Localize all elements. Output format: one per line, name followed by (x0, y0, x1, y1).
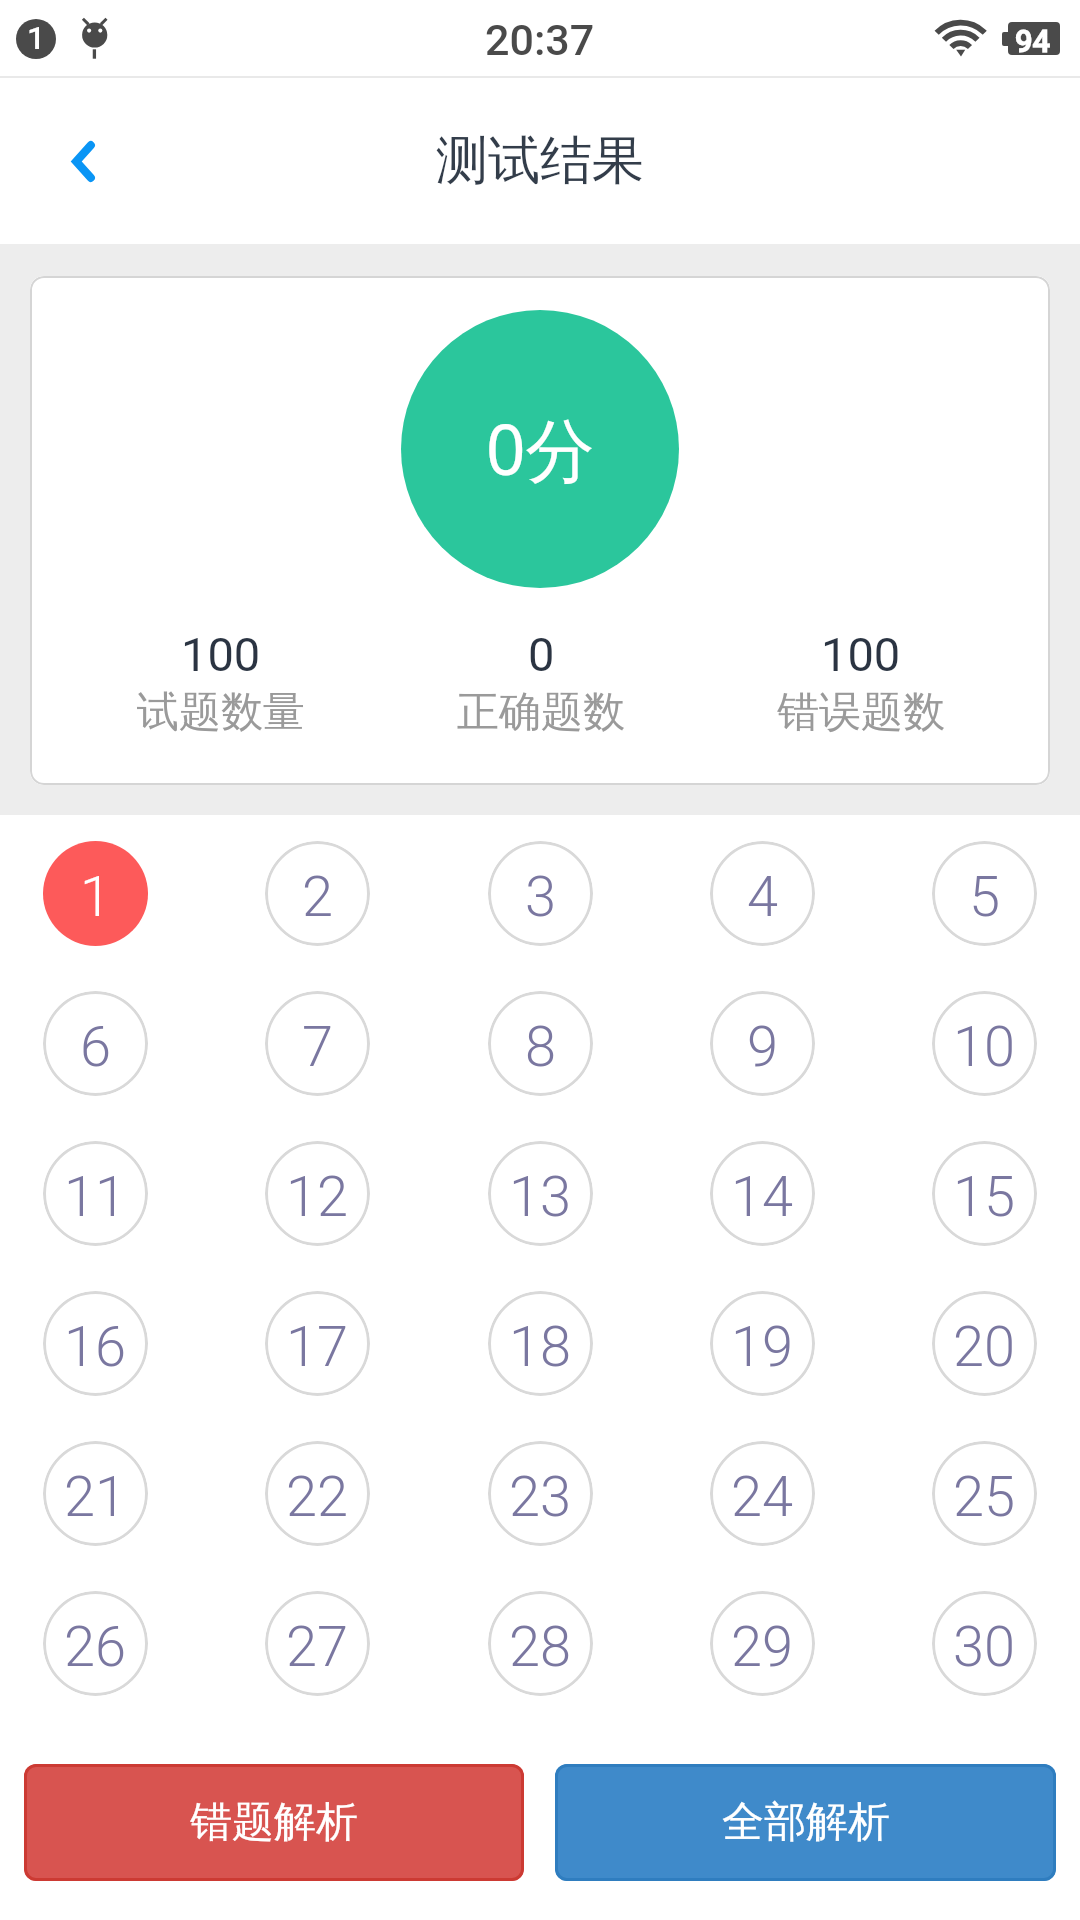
staticText: 0 (528, 627, 555, 682)
button[interactable]: 全部解析 (555, 1764, 1056, 1881)
button[interactable]: 12 (265, 1141, 370, 1246)
staticText: 全部解析 (722, 1796, 890, 1849)
button[interactable]: 30 (932, 1591, 1037, 1696)
staticText: 25 (953, 1464, 1016, 1530)
button[interactable]: 17 (265, 1291, 370, 1396)
staticText: 9 (747, 1014, 779, 1080)
button[interactable]: 23 (488, 1441, 593, 1546)
staticText: 27 (286, 1614, 349, 1680)
button[interactable]: 9 (710, 991, 815, 1096)
button[interactable]: 26 (43, 1591, 148, 1696)
button[interactable]: 1 (43, 841, 148, 946)
button[interactable]: 20 (932, 1291, 1037, 1396)
button[interactable]: 19 (710, 1291, 815, 1396)
staticText: 29 (731, 1614, 794, 1680)
staticText: 11 (64, 1164, 127, 1230)
button[interactable]: 28 (488, 1591, 593, 1696)
button[interactable]: 25 (932, 1441, 1037, 1546)
staticText: 13 (509, 1164, 572, 1230)
staticText: 30 (953, 1614, 1016, 1680)
button[interactable]: 21 (43, 1441, 148, 1546)
staticText: 2 (302, 864, 334, 930)
button[interactable]: 5 (932, 841, 1037, 946)
button[interactable]: 6 (43, 991, 148, 1096)
button[interactable]: 7 (265, 991, 370, 1096)
staticText: 21 (64, 1464, 127, 1530)
button[interactable]: 错题解析 (24, 1764, 524, 1881)
button[interactable]: 24 (710, 1441, 815, 1546)
staticText: 14 (731, 1164, 794, 1230)
button[interactable]: Back (0, 78, 166, 244)
staticText: 1 (80, 864, 112, 930)
staticText: 100 (821, 627, 901, 682)
staticText: 20 (953, 1314, 1016, 1380)
staticText: 错题解析 (190, 1796, 358, 1849)
staticText: 错误题数 (777, 686, 945, 739)
staticText: 4 (747, 864, 779, 930)
staticText: 17 (286, 1314, 349, 1380)
staticText: 19 (731, 1314, 794, 1380)
staticText: 94 (1015, 23, 1051, 55)
staticText: 正确题数 (457, 686, 625, 739)
staticText: 试题数量 (137, 686, 305, 739)
staticText: 8 (525, 1014, 557, 1080)
staticText: 15 (953, 1164, 1016, 1230)
button[interactable]: 29 (710, 1591, 815, 1696)
staticText: 12 (286, 1164, 349, 1230)
staticText: 23 (509, 1464, 572, 1530)
staticText: 100 (181, 627, 261, 682)
staticText: 24 (731, 1464, 794, 1530)
staticText: 18 (509, 1314, 572, 1380)
staticText: 16 (64, 1314, 127, 1380)
staticText: 28 (509, 1614, 572, 1680)
button[interactable]: 22 (265, 1441, 370, 1546)
button[interactable]: 13 (488, 1141, 593, 1246)
button[interactable]: 11 (43, 1141, 148, 1246)
button[interactable]: 10 (932, 991, 1037, 1096)
staticText: 3 (525, 864, 557, 930)
button[interactable]: 27 (265, 1591, 370, 1696)
staticText: 5 (969, 864, 1001, 930)
button[interactable]: 8 (488, 991, 593, 1096)
staticText: 7 (302, 1014, 334, 1080)
button[interactable]: 15 (932, 1141, 1037, 1246)
button[interactable]: 18 (488, 1291, 593, 1396)
button[interactable]: 3 (488, 841, 593, 946)
staticText: 22 (286, 1464, 349, 1530)
staticText: 10 (953, 1014, 1016, 1080)
staticText: 测试结果 (436, 128, 644, 194)
button[interactable]: 2 (265, 841, 370, 946)
staticText: 0分 (486, 401, 595, 495)
button[interactable]: 4 (710, 841, 815, 946)
button[interactable]: 14 (710, 1141, 815, 1246)
staticText: 20:37 (485, 15, 595, 65)
staticText: 6 (80, 1014, 112, 1080)
button[interactable]: 16 (43, 1291, 148, 1396)
staticText: 1 (27, 19, 46, 57)
staticText: 26 (64, 1614, 127, 1680)
